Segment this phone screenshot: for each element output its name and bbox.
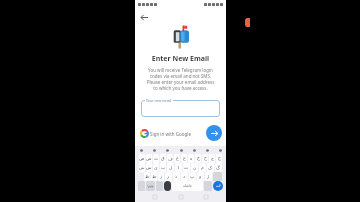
button[interactable]: Enter (213, 181, 223, 191)
staticText: چ (218, 156, 221, 161)
staticText: ق (161, 156, 165, 161)
button[interactable]: ف (167, 154, 173, 163)
button[interactable]: Keyboard tool (179, 148, 183, 152)
button[interactable]: Continue (206, 125, 222, 141)
button[interactable]: ث (153, 154, 159, 163)
button[interactable]: ۱۲۳ (146, 181, 155, 191)
staticText: ج (211, 156, 214, 161)
staticText: ث (154, 156, 159, 161)
button[interactable]: س (146, 163, 152, 172)
button[interactable]: ص (146, 154, 152, 163)
button[interactable] (141, 100, 220, 117)
staticText: ب (161, 165, 166, 170)
staticText: Your new email (146, 98, 172, 103)
button[interactable]: ه (188, 154, 194, 163)
button[interactable]: ز (158, 172, 164, 181)
button[interactable]: ک (207, 163, 214, 172)
staticText: ۱۲۳ (147, 184, 154, 189)
button[interactable]: ض (139, 154, 145, 163)
button[interactable]: ت (183, 163, 190, 172)
staticText: م (201, 165, 204, 170)
staticText: ص (146, 156, 152, 161)
button[interactable]: خ (195, 154, 201, 163)
button[interactable]: چ (216, 154, 222, 163)
staticText: Sign in with Google (150, 131, 191, 137)
button[interactable]: Back (138, 11, 150, 23)
button[interactable]: غ (174, 154, 180, 163)
staticText: ح (204, 156, 207, 161)
staticText: ژ (207, 174, 210, 179)
button[interactable]: ل (167, 163, 174, 172)
staticText: ع (183, 156, 186, 161)
staticText: فاصله (183, 184, 192, 188)
button[interactable]: ق (160, 154, 166, 163)
staticText: ا (178, 165, 180, 170)
button[interactable]: ح (202, 154, 208, 163)
button[interactable]: Keyboard tool (152, 148, 156, 152)
button[interactable]: ر (165, 172, 172, 181)
staticText: ک (208, 165, 213, 170)
staticText: ت (184, 165, 189, 170)
button[interactable]: Back (201, 192, 211, 202)
staticText: ر (167, 174, 170, 179)
staticText: ز (160, 174, 163, 179)
staticText: و (199, 174, 202, 179)
button[interactable]: ب (160, 163, 166, 172)
staticText: ظ (145, 174, 150, 179)
button[interactable]: Keyboard tool (205, 148, 209, 152)
button[interactable]: د (181, 172, 188, 181)
staticText: گ (216, 165, 221, 170)
staticText: ه (190, 156, 193, 161)
button[interactable]: Keyboard tool (165, 148, 169, 152)
button[interactable]: گ (215, 163, 222, 172)
staticText: Enter New Email (135, 54, 226, 64)
staticText: د (183, 174, 186, 179)
button[interactable]: و (197, 172, 204, 181)
button[interactable]: ظ (144, 172, 150, 181)
staticText: ف (168, 156, 173, 161)
staticText: ل (169, 165, 173, 170)
button[interactable]: پ (189, 172, 196, 181)
button[interactable]: ط (151, 172, 157, 181)
button[interactable]: Recents (150, 192, 160, 202)
button[interactable]: Language (156, 181, 163, 191)
staticText: You will receive Telegram login codes vi… (146, 67, 215, 91)
button[interactable]: ژ (205, 172, 212, 181)
staticText: ط (152, 174, 157, 179)
button[interactable]: ع (181, 154, 187, 163)
button[interactable]: Home (176, 192, 186, 202)
button[interactable]: ی (153, 163, 159, 172)
button[interactable]: ن (191, 163, 198, 172)
staticText: ض (139, 156, 145, 161)
button[interactable]: Keyboard tool (192, 148, 196, 152)
button[interactable]: م (199, 163, 206, 172)
staticText: خ (197, 156, 200, 161)
staticText: س (146, 165, 152, 170)
button[interactable]: Emoji (138, 181, 145, 191)
button[interactable]: ذ (173, 172, 180, 181)
button[interactable]: Keyboard tool (218, 148, 222, 152)
staticText: ش (139, 165, 145, 170)
button[interactable]: Voice input (164, 181, 171, 191)
staticText: ی (154, 165, 158, 170)
staticText: ن (193, 165, 197, 170)
button[interactable]: فاصله (172, 181, 203, 191)
button[interactable]: Keyboard tool (139, 148, 143, 152)
button[interactable]: ا (175, 163, 182, 172)
staticText: ذ (175, 174, 178, 179)
button[interactable]: ش (139, 163, 145, 172)
button[interactable]: Sign in with Google (141, 130, 191, 137)
staticText: پ (190, 174, 195, 179)
button[interactable]: ج (209, 154, 215, 163)
staticText: غ (176, 156, 179, 161)
